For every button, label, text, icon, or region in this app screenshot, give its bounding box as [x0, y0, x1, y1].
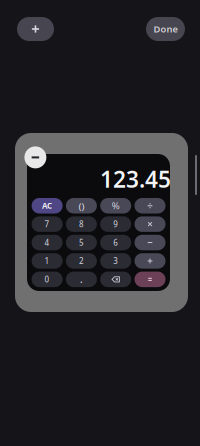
button[interactable]: Done — [146, 17, 185, 41]
button[interactable]: 2 — [66, 253, 97, 269]
staticText: AC — [42, 200, 52, 211]
staticText: 3 — [113, 256, 118, 266]
button[interactable]: 1 — [32, 253, 63, 269]
staticText: () — [78, 200, 84, 212]
button[interactable]: Add — [17, 17, 54, 41]
button[interactable]: Minus — [134, 235, 165, 250]
button[interactable]: 0 — [32, 272, 63, 287]
staticText: 0 — [45, 274, 50, 285]
button[interactable]: Plus — [134, 253, 165, 269]
button[interactable]: 3 — [100, 253, 131, 269]
staticText: % — [112, 200, 120, 212]
button[interactable]: Equals — [134, 272, 165, 287]
staticText: 1 — [45, 256, 50, 266]
button[interactable]: Collapse — [24, 146, 46, 168]
staticText: 9 — [113, 219, 118, 229]
button[interactable]: Divide — [134, 198, 165, 213]
button[interactable]: AC — [32, 198, 63, 213]
staticText: 4 — [45, 237, 50, 248]
button[interactable]: . — [66, 272, 97, 287]
button[interactable]: () — [66, 198, 97, 213]
button[interactable]: 7 — [32, 216, 63, 232]
button[interactable]: 6 — [100, 235, 131, 250]
staticText: 123.45 — [100, 164, 171, 194]
staticText: Done — [153, 23, 177, 35]
button[interactable]: % — [100, 198, 131, 213]
button[interactable]: 9 — [100, 216, 131, 232]
button[interactable]: 8 — [66, 216, 97, 232]
button[interactable]: 5 — [66, 235, 97, 250]
staticText: 2 — [79, 256, 84, 266]
staticText: 8 — [79, 219, 84, 229]
button[interactable]: Delete — [100, 272, 131, 287]
button[interactable]: Multiply — [134, 216, 165, 232]
staticText: 5 — [79, 237, 84, 248]
staticText: 7 — [45, 219, 50, 229]
staticText: . — [80, 273, 83, 286]
button[interactable]: 4 — [32, 235, 63, 250]
staticText: 6 — [113, 237, 118, 248]
